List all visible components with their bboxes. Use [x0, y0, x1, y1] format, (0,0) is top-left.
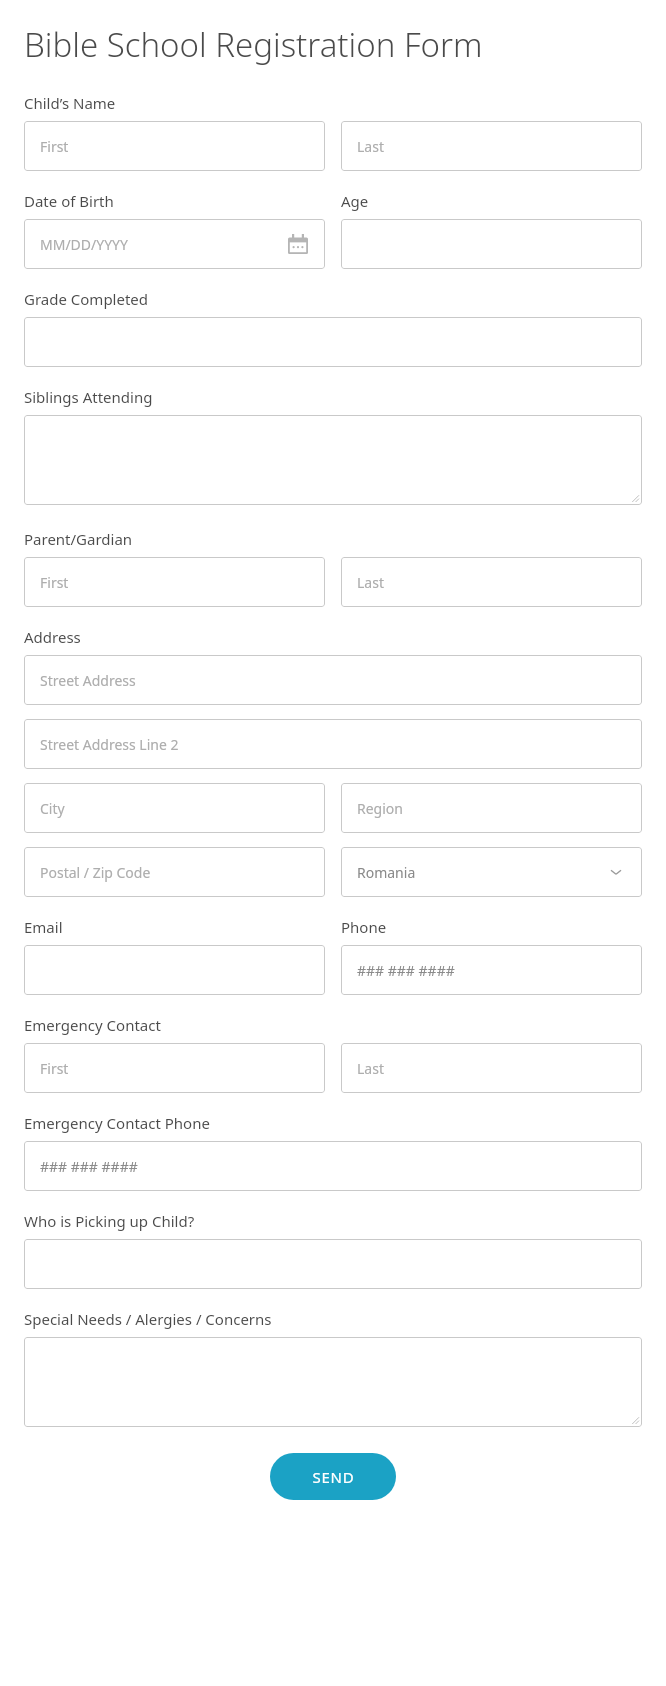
staticText: Grade Completed	[24, 289, 149, 309]
button[interactable]: Emergency contact phone	[24, 1141, 642, 1191]
button[interactable]: Pick date	[287, 233, 309, 255]
staticText: Last	[357, 1059, 384, 1078]
staticText: Romania	[357, 863, 416, 882]
staticText: Phone	[341, 917, 387, 937]
staticText: Who is Picking up Child?	[24, 1211, 195, 1231]
button[interactable]: Age	[341, 219, 642, 269]
button[interactable]: Street address line 2	[24, 719, 642, 769]
button[interactable]: Country	[341, 847, 642, 897]
button[interactable]: Child last name	[341, 121, 642, 171]
button[interactable]: Parent last name	[341, 557, 642, 607]
staticText: Parent/Gardian	[24, 529, 133, 549]
staticText: First	[40, 137, 69, 156]
staticText: Street Address	[40, 671, 136, 690]
staticText: Siblings Attending	[24, 387, 153, 407]
button[interactable]: Siblings attending	[24, 415, 642, 505]
button[interactable]: Emergency contact last name	[341, 1043, 642, 1093]
button[interactable]: Open country list	[606, 862, 626, 882]
button[interactable]: Emergency contact first name	[24, 1043, 325, 1093]
button[interactable]: Postal or zip code	[24, 847, 325, 897]
button[interactable]: Grade completed	[24, 317, 642, 367]
staticText: ### ### ####	[357, 961, 455, 980]
staticText: ### ### ####	[40, 1157, 138, 1176]
button[interactable]: Special needs, allergies or concerns	[24, 1337, 642, 1427]
button[interactable]: Region	[341, 783, 642, 833]
button[interactable]: SEND	[270, 1453, 396, 1500]
staticText: City	[40, 799, 65, 818]
button[interactable]: City	[24, 783, 325, 833]
staticText: Child’s Name	[24, 93, 116, 113]
button[interactable]: Who is picking up child	[24, 1239, 642, 1289]
button[interactable]: Phone	[341, 945, 642, 995]
staticText: SEND	[312, 1467, 355, 1487]
staticText: Bible School Registration Form	[24, 22, 483, 67]
staticText: Last	[357, 573, 384, 592]
staticText: Emergency Contact Phone	[24, 1113, 210, 1133]
staticText: MM/DD/YYYY	[40, 235, 128, 254]
staticText: Age	[341, 191, 369, 211]
staticText: Postal / Zip Code	[40, 863, 151, 882]
staticText: Date of Birth	[24, 191, 114, 211]
staticText: Address	[24, 627, 81, 647]
staticText: Email	[24, 917, 63, 937]
staticText: Special Needs / Alergies / Concerns	[24, 1309, 272, 1329]
button[interactable]: Date of birth	[24, 219, 325, 269]
staticText: Street Address Line 2	[40, 735, 179, 754]
staticText: Emergency Contact	[24, 1015, 161, 1035]
staticText: First	[40, 1059, 69, 1078]
staticText: First	[40, 573, 69, 592]
button[interactable]: Street address	[24, 655, 642, 705]
staticText: Last	[357, 137, 384, 156]
button[interactable]: Email	[24, 945, 325, 995]
button[interactable]: Parent first name	[24, 557, 325, 607]
staticText: Region	[357, 799, 403, 818]
button[interactable]: Child first name	[24, 121, 325, 171]
